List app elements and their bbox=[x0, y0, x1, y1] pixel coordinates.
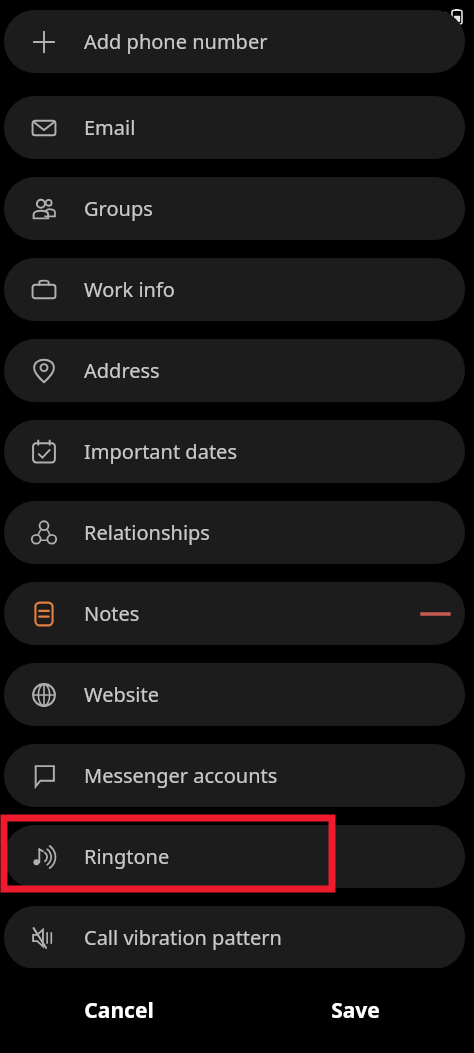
staticText: Ringtone bbox=[84, 843, 170, 870]
button[interactable]: Ringtone bbox=[4, 825, 465, 888]
button[interactable]: Cancel bbox=[0, 968, 237, 1053]
staticText: Cancel bbox=[84, 996, 154, 1025]
button[interactable]: Website bbox=[4, 663, 465, 726]
button[interactable]: Remove Notes bbox=[422, 604, 449, 624]
staticText: Add phone number bbox=[84, 28, 268, 55]
button[interactable]: Groups bbox=[4, 177, 465, 240]
staticText: Call vibration pattern bbox=[84, 924, 282, 951]
staticText: 09:23 bbox=[27, 6, 66, 26]
staticText: Important dates bbox=[84, 438, 237, 465]
button[interactable]: Add phone number bbox=[4, 10, 465, 73]
button[interactable]: Relationships bbox=[4, 501, 465, 564]
staticText: Address bbox=[84, 357, 160, 384]
staticText: Notes bbox=[84, 600, 140, 627]
staticText: Messenger accounts bbox=[84, 762, 278, 789]
staticText: Groups bbox=[84, 195, 153, 222]
button[interactable]: Email bbox=[4, 96, 465, 159]
staticText: 54% bbox=[419, 6, 449, 26]
staticText: Email bbox=[84, 114, 136, 141]
button[interactable]: Important dates bbox=[4, 420, 465, 483]
button[interactable]: Call vibration pattern bbox=[4, 906, 465, 969]
button[interactable]: Messenger accounts bbox=[4, 744, 465, 807]
button[interactable]: Address bbox=[4, 339, 465, 402]
button[interactable]: Notes bbox=[4, 582, 465, 645]
button[interactable]: Save bbox=[237, 968, 474, 1053]
staticText: Work info bbox=[84, 276, 175, 303]
staticText: Relationships bbox=[84, 519, 210, 546]
staticText: Save bbox=[331, 996, 380, 1025]
staticText: Website bbox=[84, 681, 160, 708]
button[interactable]: Work info bbox=[4, 258, 465, 321]
